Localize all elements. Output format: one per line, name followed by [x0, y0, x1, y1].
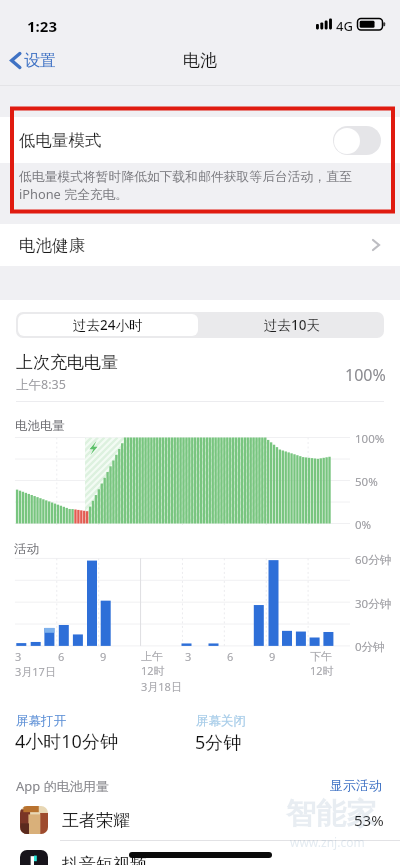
staticText: 3: [185, 649, 192, 664]
staticText: 上午 12时: [141, 649, 165, 678]
button[interactable]: 电池健康: [0, 224, 400, 266]
staticText: 1:23: [27, 16, 57, 36]
staticText: 上午8:35: [16, 376, 66, 393]
staticText: 上次充电电量: [16, 352, 118, 373]
staticText: App 的电池用量: [16, 777, 109, 795]
staticText: 设置: [24, 51, 56, 71]
staticText: 30分钟: [355, 596, 392, 612]
staticText: 下午 12时: [310, 649, 334, 678]
staticText: 100%: [345, 364, 386, 386]
button[interactable]: 抖音短视频: [0, 845, 400, 865]
staticText: 屏幕关闭: [196, 713, 246, 729]
staticText: 9: [269, 649, 276, 664]
staticText: 电池健康: [19, 235, 85, 256]
staticText: 6: [227, 649, 234, 664]
staticText: 屏幕打开: [16, 713, 66, 729]
staticText: 100%: [355, 431, 385, 447]
staticText: 王者荣耀: [62, 810, 130, 831]
staticText: 0分钟: [355, 639, 385, 655]
button[interactable]: Low Power Mode toggle: [333, 126, 381, 155]
staticText: 低电量模式: [19, 130, 102, 151]
staticText: 低电量模式将暂时降低如下载和邮件获取等后台活动，直至 iPhone 完全充电。: [19, 169, 352, 203]
staticText: 智能家: [286, 795, 376, 833]
button[interactable]: 设置: [10, 50, 56, 71]
staticText: 电池: [183, 50, 217, 71]
staticText: 活动: [14, 541, 39, 557]
button[interactable]: 过去24小时: [18, 314, 198, 336]
staticText: 60分钟: [355, 552, 392, 568]
button[interactable]: 过去10天: [200, 312, 384, 338]
staticText: www.znj.com: [290, 834, 365, 850]
staticText: 6: [58, 649, 65, 664]
staticText: 过去10天: [264, 316, 320, 334]
staticText: 4G: [336, 17, 353, 35]
staticText: 3月17日: [15, 664, 56, 679]
staticText: 9: [100, 649, 107, 664]
staticText: 3月18日: [141, 679, 182, 694]
button[interactable]: 王者荣耀: [0, 801, 400, 839]
staticText: 电池电量: [15, 418, 65, 434]
staticText: 50%: [355, 474, 378, 490]
staticText: 抖音短视频: [62, 854, 147, 865]
staticText: 过去24小时: [73, 316, 143, 334]
staticText: 5分钟: [195, 730, 242, 755]
button[interactable]: 低电量模式: [0, 117, 400, 163]
staticText: 3: [15, 649, 22, 664]
staticText: 显示活动: [330, 777, 382, 793]
staticText: 0%: [355, 517, 372, 533]
button[interactable]: 显示活动: [330, 777, 382, 793]
staticText: 4小时10分钟: [15, 729, 118, 754]
staticText: 53%: [354, 810, 384, 830]
